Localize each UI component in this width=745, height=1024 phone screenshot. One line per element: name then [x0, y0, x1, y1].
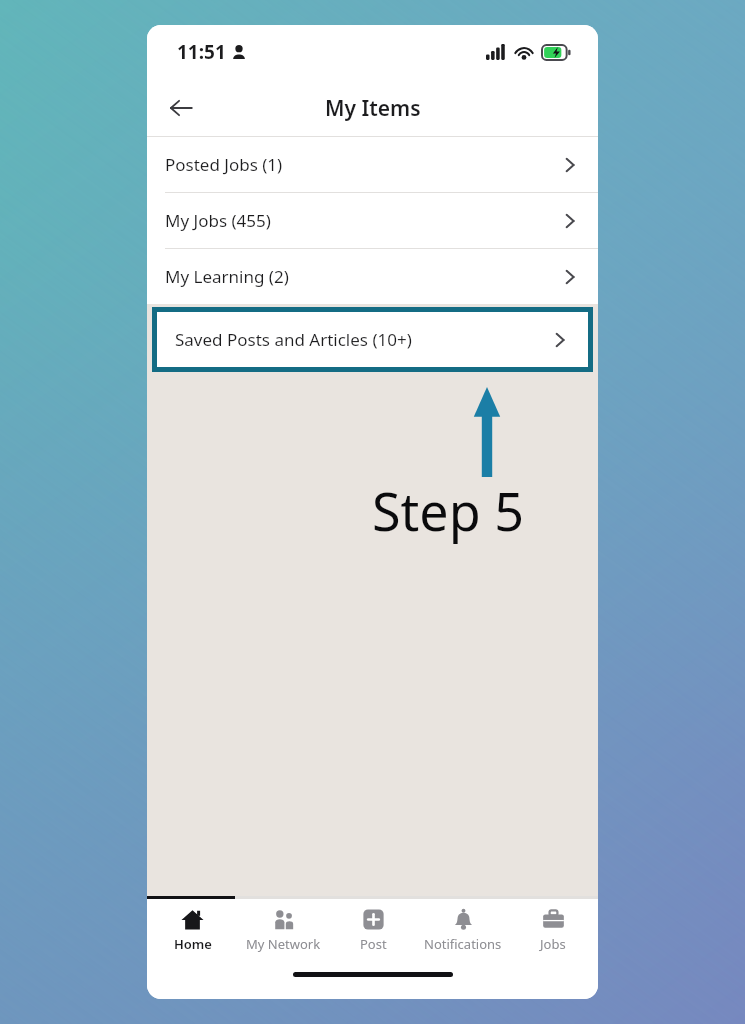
button[interactable]: Back: [157, 84, 205, 132]
staticText: My Learning (2): [165, 265, 289, 288]
staticText: Posted Jobs (1): [165, 153, 283, 176]
staticText: Notifications: [424, 935, 502, 953]
staticText: 11:51: [177, 39, 226, 65]
button[interactable]: Jobs: [508, 899, 598, 961]
button[interactable]: My Learning (2): [147, 249, 598, 304]
staticText: My Items: [325, 94, 421, 123]
staticText: Home: [174, 935, 212, 953]
button[interactable]: Home: [147, 899, 238, 961]
button[interactable]: Posted Jobs (1): [147, 137, 598, 192]
button[interactable]: Post: [328, 899, 418, 961]
button[interactable]: Saved Posts and Articles (10+): [157, 312, 588, 367]
button[interactable]: My Network: [238, 899, 328, 961]
staticText: Jobs: [540, 935, 566, 953]
button[interactable]: My Jobs (455): [147, 193, 598, 248]
staticText: My Network: [246, 935, 321, 953]
button[interactable]: Notifications: [418, 899, 508, 961]
staticText: Step 5: [372, 475, 524, 546]
staticText: My Jobs (455): [165, 209, 271, 232]
staticText: Post: [360, 935, 387, 953]
staticText: Saved Posts and Articles (10+): [175, 328, 412, 351]
